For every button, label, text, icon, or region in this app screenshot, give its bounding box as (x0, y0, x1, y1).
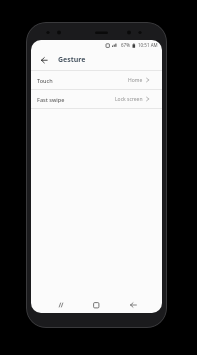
button[interactable] (89, 298, 104, 312)
staticText: Lock screen (115, 96, 143, 103)
staticText: 10:51 AM (138, 42, 158, 48)
staticText: Touch (37, 77, 53, 84)
button[interactable] (126, 298, 141, 312)
button[interactable] (34, 50, 55, 70)
staticText: 67% (121, 42, 130, 48)
button[interactable]: Fast swipe (31, 90, 162, 108)
staticText: Home (128, 77, 143, 84)
button[interactable] (53, 298, 68, 312)
staticText: Gesture (58, 55, 86, 65)
button[interactable]: Touch (31, 71, 162, 89)
staticText: Fast swipe (37, 96, 65, 103)
